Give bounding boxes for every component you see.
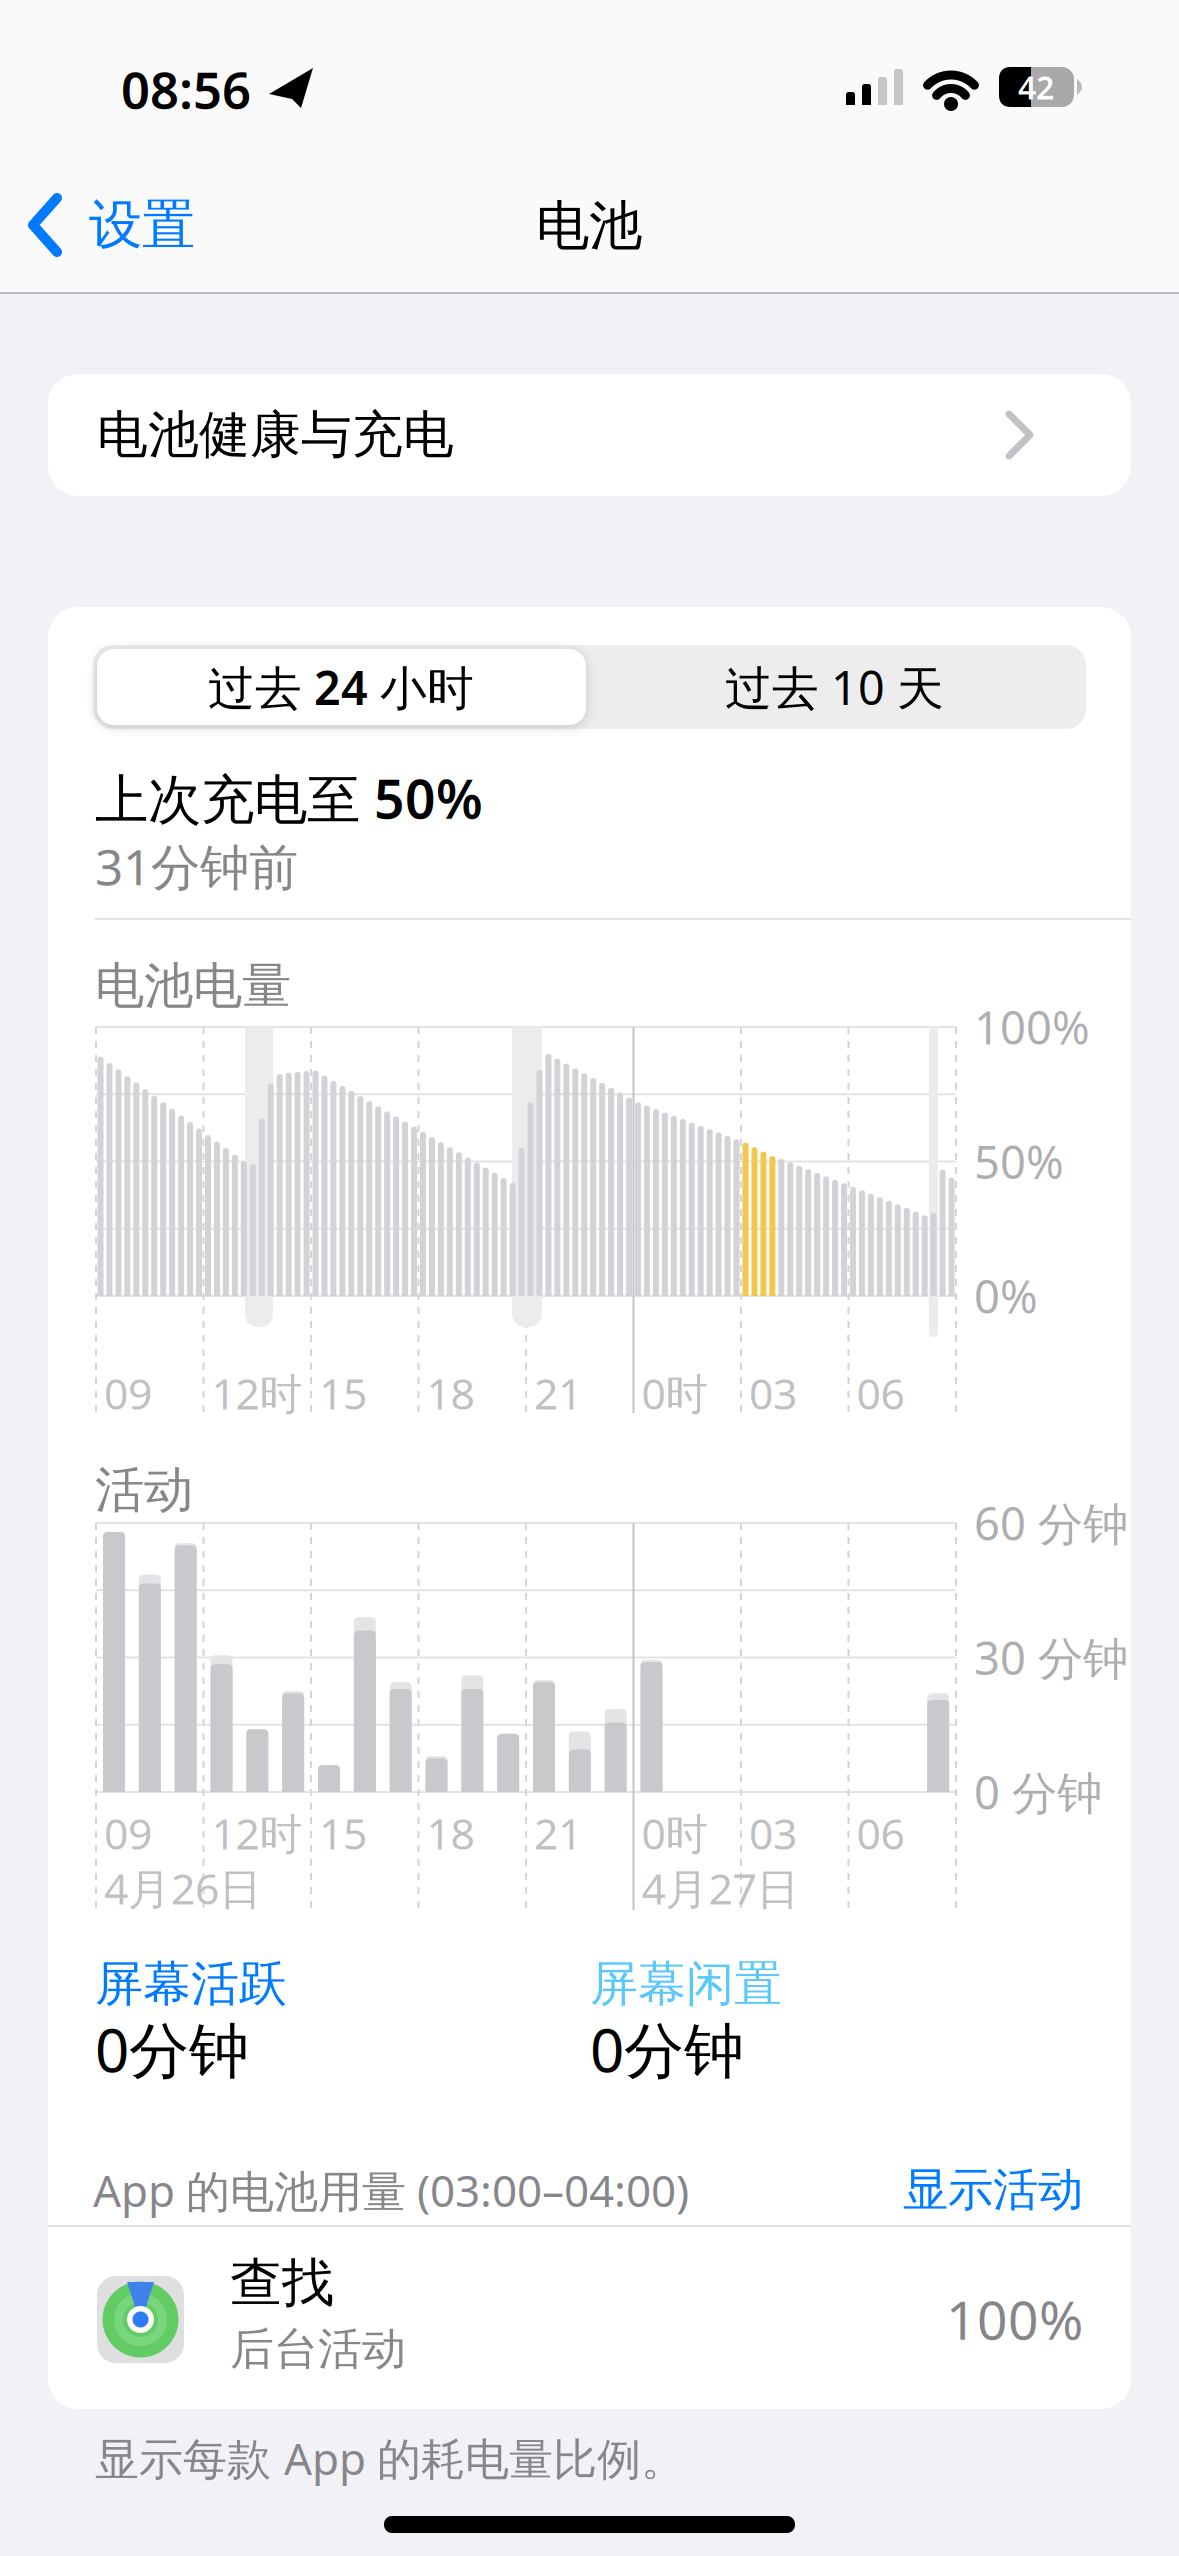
staticText: 100%: [974, 997, 1090, 1057]
staticText: 21: [534, 1805, 582, 1861]
staticText: 过去 10 天: [725, 656, 944, 718]
staticText: 0 分钟: [974, 1762, 1102, 1822]
staticText: 15: [319, 1365, 367, 1421]
staticText: 4月26日: [104, 1860, 262, 1916]
staticText: 09: [104, 1805, 152, 1861]
staticText: 12时: [211, 1365, 302, 1421]
staticText: 15: [319, 1805, 367, 1861]
staticText: 100%: [946, 2284, 1083, 2354]
staticText: 电池健康与充电: [97, 404, 454, 466]
staticText: 活动: [95, 1460, 193, 1520]
staticText: 后台活动: [230, 2322, 406, 2376]
staticText: 08:56: [121, 55, 251, 123]
staticText: 显示每款 App 的耗电量比例。: [95, 2429, 685, 2487]
staticText: 电池: [536, 193, 642, 259]
staticText: 0%: [974, 1266, 1038, 1326]
staticText: 50%: [974, 1131, 1064, 1192]
staticText: 30 分钟: [974, 1627, 1128, 1688]
staticText: 查找: [230, 2251, 334, 2315]
button[interactable]: 电池健康与充电: [48, 374, 1131, 496]
button[interactable]: 显示活动: [683, 2150, 1083, 2230]
staticText: 06: [856, 1805, 904, 1861]
staticText: 03: [749, 1365, 797, 1421]
button[interactable]: 过去 24 小时: [97, 649, 586, 725]
staticText: 42: [1018, 66, 1054, 108]
staticText: 0时: [641, 1805, 708, 1861]
staticText: 0时: [641, 1365, 708, 1421]
staticText: 18: [426, 1805, 474, 1861]
staticText: 设置: [89, 192, 195, 258]
staticText: 03: [749, 1805, 797, 1861]
staticText: 过去 24 小时: [208, 656, 474, 718]
staticText: 09: [104, 1365, 152, 1421]
staticText: 显示活动: [903, 2162, 1083, 2218]
staticText: App 的电池用量 (03:00–04:00): [93, 2161, 689, 2219]
staticText: 屏幕活跃: [95, 1954, 287, 2013]
staticText: 上次充电至 50%: [95, 763, 483, 833]
staticText: 21: [534, 1365, 582, 1421]
staticText: 0分钟: [590, 2009, 744, 2089]
staticText: 电池电量: [95, 956, 291, 1016]
button[interactable]: 查找: [48, 2226, 1131, 2409]
staticText: 0分钟: [95, 2009, 249, 2089]
button[interactable]: 返回设置: [20, 180, 300, 270]
staticText: 60 分钟: [974, 1493, 1128, 1553]
staticText: 06: [856, 1365, 904, 1421]
button[interactable]: 过去 10 天: [590, 649, 1079, 725]
staticText: 18: [426, 1365, 474, 1421]
staticText: 12时: [211, 1805, 302, 1861]
staticText: 屏幕闲置: [590, 1954, 782, 2013]
staticText: 4月27日: [641, 1860, 799, 1916]
staticText: 31分钟前: [95, 833, 298, 899]
